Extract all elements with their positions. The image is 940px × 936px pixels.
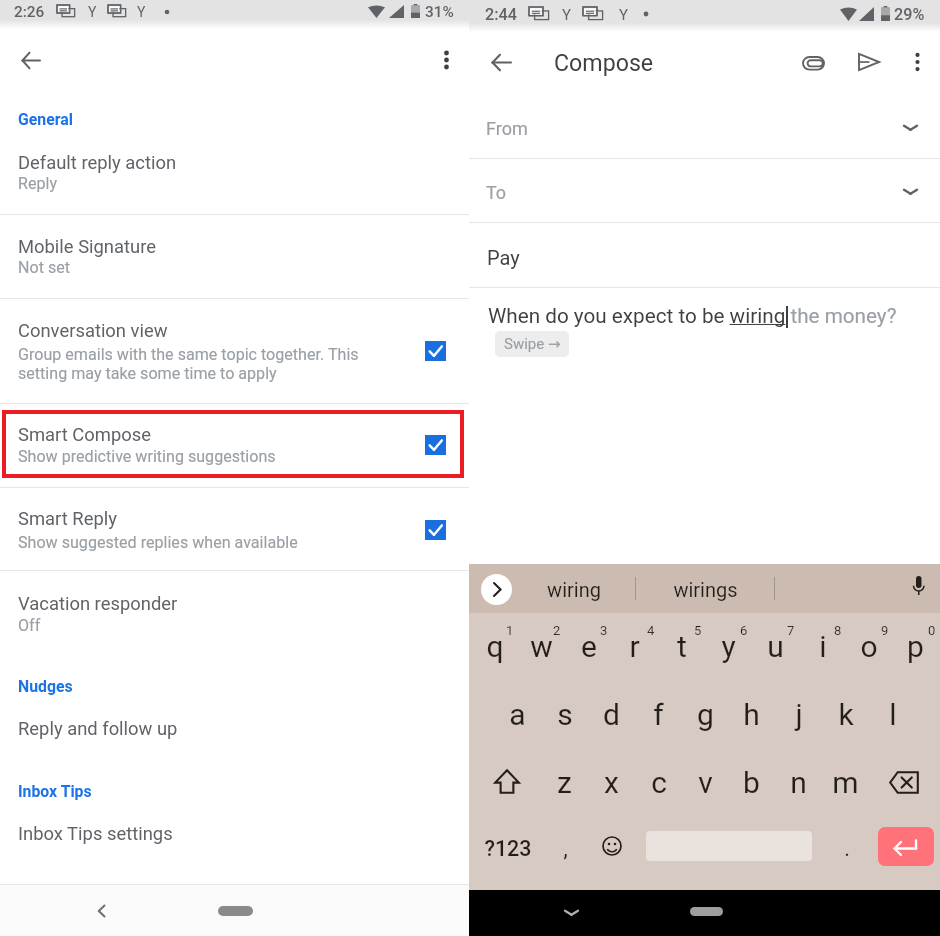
button[interactable]: l xyxy=(869,682,916,751)
button[interactable]: Backspace xyxy=(889,771,919,794)
button[interactable]: Back xyxy=(22,52,40,69)
button[interactable]: n xyxy=(775,751,822,820)
staticText: j xyxy=(795,697,803,732)
button[interactable]: Smart Compose toggle xyxy=(425,435,446,455)
staticText: Y xyxy=(619,6,629,24)
button[interactable]: q xyxy=(471,613,518,682)
button[interactable]: e xyxy=(565,613,612,682)
button[interactable]: wiring xyxy=(513,564,635,613)
staticText: Vacation responder xyxy=(18,593,178,615)
staticText: d xyxy=(603,697,620,732)
button[interactable]: y xyxy=(705,613,752,682)
button[interactable]: Expand to xyxy=(904,187,917,196)
staticText: setting may take some time to apply xyxy=(18,364,277,383)
button[interactable]: x xyxy=(588,751,635,820)
staticText: , xyxy=(563,836,568,861)
button[interactable]: Space xyxy=(632,820,826,890)
button[interactable]: d xyxy=(588,682,635,751)
button[interactable]: i xyxy=(799,613,846,682)
staticText: Not set xyxy=(18,258,71,277)
button[interactable]: , xyxy=(542,820,589,890)
button[interactable]: More options xyxy=(909,50,926,74)
staticText: When do you expect to be wiring the mone… xyxy=(488,304,897,328)
button[interactable]: p xyxy=(892,613,939,682)
button[interactable]: Reply and follow up xyxy=(0,705,469,763)
button[interactable]: Back xyxy=(98,905,105,917)
button[interactable]: Pay xyxy=(469,222,940,288)
button[interactable]: Enter xyxy=(878,827,934,866)
staticText: 8 xyxy=(834,623,842,638)
staticText: v xyxy=(698,765,713,800)
button[interactable]: z xyxy=(541,751,588,820)
staticText: wirings xyxy=(673,578,738,601)
button[interactable]: Swipe → xyxy=(495,331,569,357)
staticText: o xyxy=(860,629,878,664)
button[interactable]: j xyxy=(775,682,822,751)
button[interactable]: k xyxy=(822,682,869,751)
staticText: Nudges xyxy=(18,677,73,696)
button[interactable]: Smart Reply xyxy=(0,487,469,570)
staticText: Reply xyxy=(18,174,58,193)
button[interactable]: Inbox Tips settings xyxy=(0,810,469,868)
button[interactable]: Shift xyxy=(494,769,520,794)
button[interactable]: ?123 xyxy=(478,820,538,890)
button[interactable]: More options xyxy=(438,48,455,72)
button[interactable]: Home xyxy=(190,890,280,936)
button[interactable]: wirings xyxy=(636,564,775,613)
button[interactable]: Conversation view xyxy=(0,298,469,403)
button[interactable]: Vacation responder, Off xyxy=(0,570,469,655)
button[interactable]: Smart Compose xyxy=(0,403,469,487)
staticText: Pay xyxy=(487,246,520,269)
button[interactable]: r xyxy=(611,613,658,682)
button[interactable]: v xyxy=(682,751,729,820)
button[interactable]: From xyxy=(469,94,940,158)
staticText: 7 xyxy=(787,623,795,638)
button[interactable]: Expand from xyxy=(904,123,917,132)
button[interactable]: f xyxy=(635,682,682,751)
button[interactable]: Attach file xyxy=(802,55,826,71)
staticText: 1 xyxy=(506,623,514,638)
button[interactable]: Voice input xyxy=(912,576,925,600)
button[interactable]: c xyxy=(635,751,682,820)
staticText: Show suggested replies when available xyxy=(18,533,298,552)
staticText: 5 xyxy=(694,623,702,638)
staticText: From xyxy=(486,118,528,139)
staticText: 0 xyxy=(928,623,936,638)
button[interactable]: Mobile Signature, Not set xyxy=(0,214,469,298)
button[interactable]: Hide keyboard xyxy=(565,908,578,917)
button[interactable]: Expand suggestions xyxy=(481,574,512,605)
staticText: Swipe → xyxy=(504,335,561,353)
button[interactable]: Back xyxy=(492,54,511,71)
staticText: z xyxy=(557,765,572,800)
staticText: 3 xyxy=(600,623,608,638)
button[interactable]: s xyxy=(541,682,588,751)
button[interactable]: Home xyxy=(662,890,752,936)
button[interactable]: u xyxy=(752,613,799,682)
button[interactable]: Smart Reply toggle xyxy=(425,520,446,540)
button[interactable]: Default reply action, Reply xyxy=(0,137,469,214)
button[interactable]: h xyxy=(728,682,775,751)
button[interactable]: Send xyxy=(858,53,880,71)
button[interactable]: w xyxy=(518,613,565,682)
staticText: h xyxy=(743,697,760,732)
button[interactable]: b xyxy=(728,751,775,820)
staticText: Reply and follow up xyxy=(18,718,178,740)
staticText: u xyxy=(767,629,784,664)
staticText: Y xyxy=(137,4,146,20)
button[interactable]: m xyxy=(822,751,869,820)
staticText: Off xyxy=(18,616,41,635)
staticText: Compose xyxy=(554,49,654,76)
button[interactable]: t xyxy=(658,613,705,682)
button[interactable]: To xyxy=(469,158,940,222)
button[interactable]: Emoji xyxy=(602,836,622,856)
button[interactable]: o xyxy=(845,613,892,682)
staticText: l xyxy=(889,697,897,732)
button[interactable]: g xyxy=(682,682,729,751)
button[interactable]: a xyxy=(494,682,541,751)
staticText: q xyxy=(486,629,504,664)
staticText: 2:26 xyxy=(14,3,45,21)
button[interactable]: Conversation view toggle xyxy=(425,341,446,361)
staticText: a xyxy=(509,697,526,732)
button[interactable]: . xyxy=(823,820,870,890)
staticText: g xyxy=(697,697,714,732)
